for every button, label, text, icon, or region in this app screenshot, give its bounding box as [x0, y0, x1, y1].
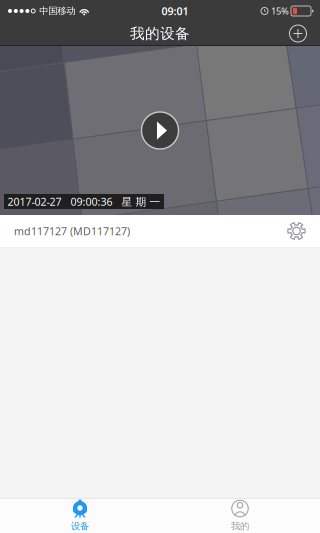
button[interactable]: Play — [130, 100, 190, 160]
button[interactable]: Add device — [276, 22, 320, 45]
staticText: md117127 (MD117127) — [14, 224, 130, 238]
staticText: 2017-02-27 09:00:36 星 期 一 — [7, 194, 160, 209]
button[interactable]: 我的 — [160, 498, 320, 533]
staticText: 09:01 — [162, 4, 189, 18]
staticText: 设备 — [71, 520, 89, 532]
staticText: 我的设备 — [130, 24, 190, 42]
button[interactable]: 设备 — [0, 498, 160, 533]
button[interactable]: md117127 (MD117127) — [0, 215, 320, 247]
staticText: 15% — [271, 5, 289, 17]
staticText: 中国移动 — [39, 5, 75, 17]
staticText: 我的 — [231, 520, 249, 532]
